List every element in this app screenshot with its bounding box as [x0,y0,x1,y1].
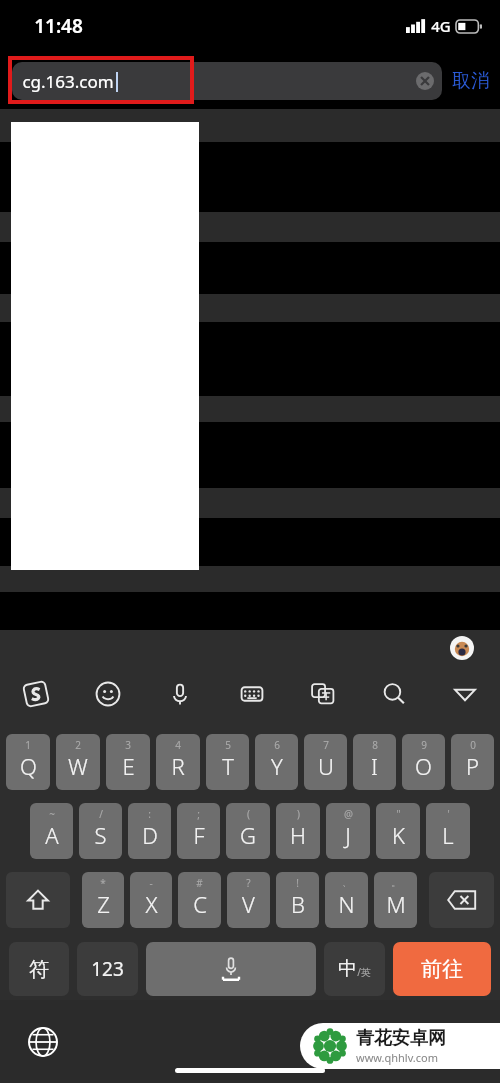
staticText: P [466,751,479,781]
staticText: 、 [342,876,352,889]
staticText: * [100,876,106,890]
button[interactable]: Hide keyboard [429,673,500,715]
button[interactable]: ! [276,872,319,928]
staticText: ( [247,807,250,821]
button[interactable]: # [178,872,221,928]
staticText: /英 [357,965,371,979]
button[interactable]: * [82,872,124,928]
button[interactable]: @ [326,803,370,859]
staticText: ' [447,807,450,821]
staticText: D [142,820,158,850]
button[interactable]: ' [426,803,470,859]
staticText: U [318,751,334,781]
staticText: ~ [49,807,55,821]
button[interactable]: 3 [106,734,150,790]
button[interactable]: Assistant avatar [450,636,474,660]
staticText: 4G [431,16,451,36]
button[interactable]: ( [226,803,270,859]
staticText: : [148,807,151,821]
button[interactable]: 。 [374,872,417,928]
staticText: O [415,751,432,781]
button[interactable]: 取消 [452,69,490,93]
button[interactable]: Voice input [144,673,216,715]
staticText: 7 [323,738,329,752]
staticText: 9 [421,738,427,752]
staticText: ! [296,876,299,890]
staticText: A [45,820,59,850]
button[interactable]: Backspace [429,872,494,928]
button[interactable]: 符 [9,942,69,996]
button[interactable]: Space [146,942,316,996]
staticText: ? [246,876,251,890]
button[interactable]: Keyboard layout [216,673,287,715]
staticText: 6 [274,738,280,752]
button[interactable]: 5 [206,734,249,790]
staticText: " [396,807,401,821]
button[interactable]: ) [276,803,320,859]
button[interactable]: Switch language [26,1025,60,1059]
button[interactable]: Shift [6,872,70,928]
button[interactable]: Clear text [416,72,434,90]
staticText: Q [20,751,37,781]
staticText: V [242,889,255,919]
staticText: I [371,751,378,781]
button[interactable]: 4 [156,734,200,790]
button[interactable]: 、 [325,872,368,928]
button[interactable]: Emoji [72,673,144,715]
staticText: W [68,751,88,781]
button[interactable]: ; [177,803,220,859]
button[interactable]: 0 [451,734,494,790]
staticText: Z [97,889,110,919]
staticText: M [386,889,406,919]
button[interactable]: ? [227,872,270,928]
staticText: 1 [25,738,31,752]
button[interactable]: Sogou input [0,673,72,715]
button[interactable]: cg.163.com [12,62,442,100]
staticText: 123 [91,956,124,982]
button[interactable]: 中 [324,942,385,996]
staticText: 2 [75,738,81,752]
staticText: 0 [470,738,476,752]
staticText: Y [271,751,283,781]
button[interactable]: Search [358,673,429,715]
staticText: 8 [372,738,378,752]
staticText: ) [297,807,300,821]
staticText: K [392,820,405,850]
button[interactable]: ~ [30,803,73,859]
button[interactable]: 1 [6,734,50,790]
button[interactable]: 前往 [393,942,491,996]
staticText: J [345,820,351,850]
staticText: L [442,820,454,850]
staticText: 前往 [421,956,463,982]
staticText: X [145,889,158,919]
button[interactable]: 9 [402,734,445,790]
staticText: cg.163.com [22,70,114,93]
staticText: 11:48 [34,13,83,39]
staticText: E [122,751,135,781]
staticText: T [222,751,234,781]
staticText: - [149,876,153,890]
staticText: 5 [225,738,231,752]
staticText: 取消 [452,69,490,93]
button[interactable]: - [130,872,172,928]
button[interactable]: 123 [77,942,138,996]
staticText: G [240,820,256,850]
staticText: S [94,820,107,850]
button[interactable]: 7 [304,734,347,790]
staticText: 中 [338,957,357,981]
button[interactable]: : [128,803,171,859]
button[interactable]: 2 [56,734,100,790]
staticText: 符 [29,957,49,982]
staticText: 3 [125,738,131,752]
button[interactable]: 6 [255,734,298,790]
button[interactable]: / [79,803,122,859]
staticText: www.qhhlv.com [356,1050,438,1065]
staticText: 青花安卓网 [356,1027,446,1050]
staticText: 4 [175,738,181,752]
button[interactable]: Translate [287,673,358,715]
staticText: F [193,820,205,850]
button[interactable]: 8 [353,734,396,790]
button[interactable]: " [376,803,420,859]
staticText: H [290,820,306,850]
staticText: # [196,876,203,890]
